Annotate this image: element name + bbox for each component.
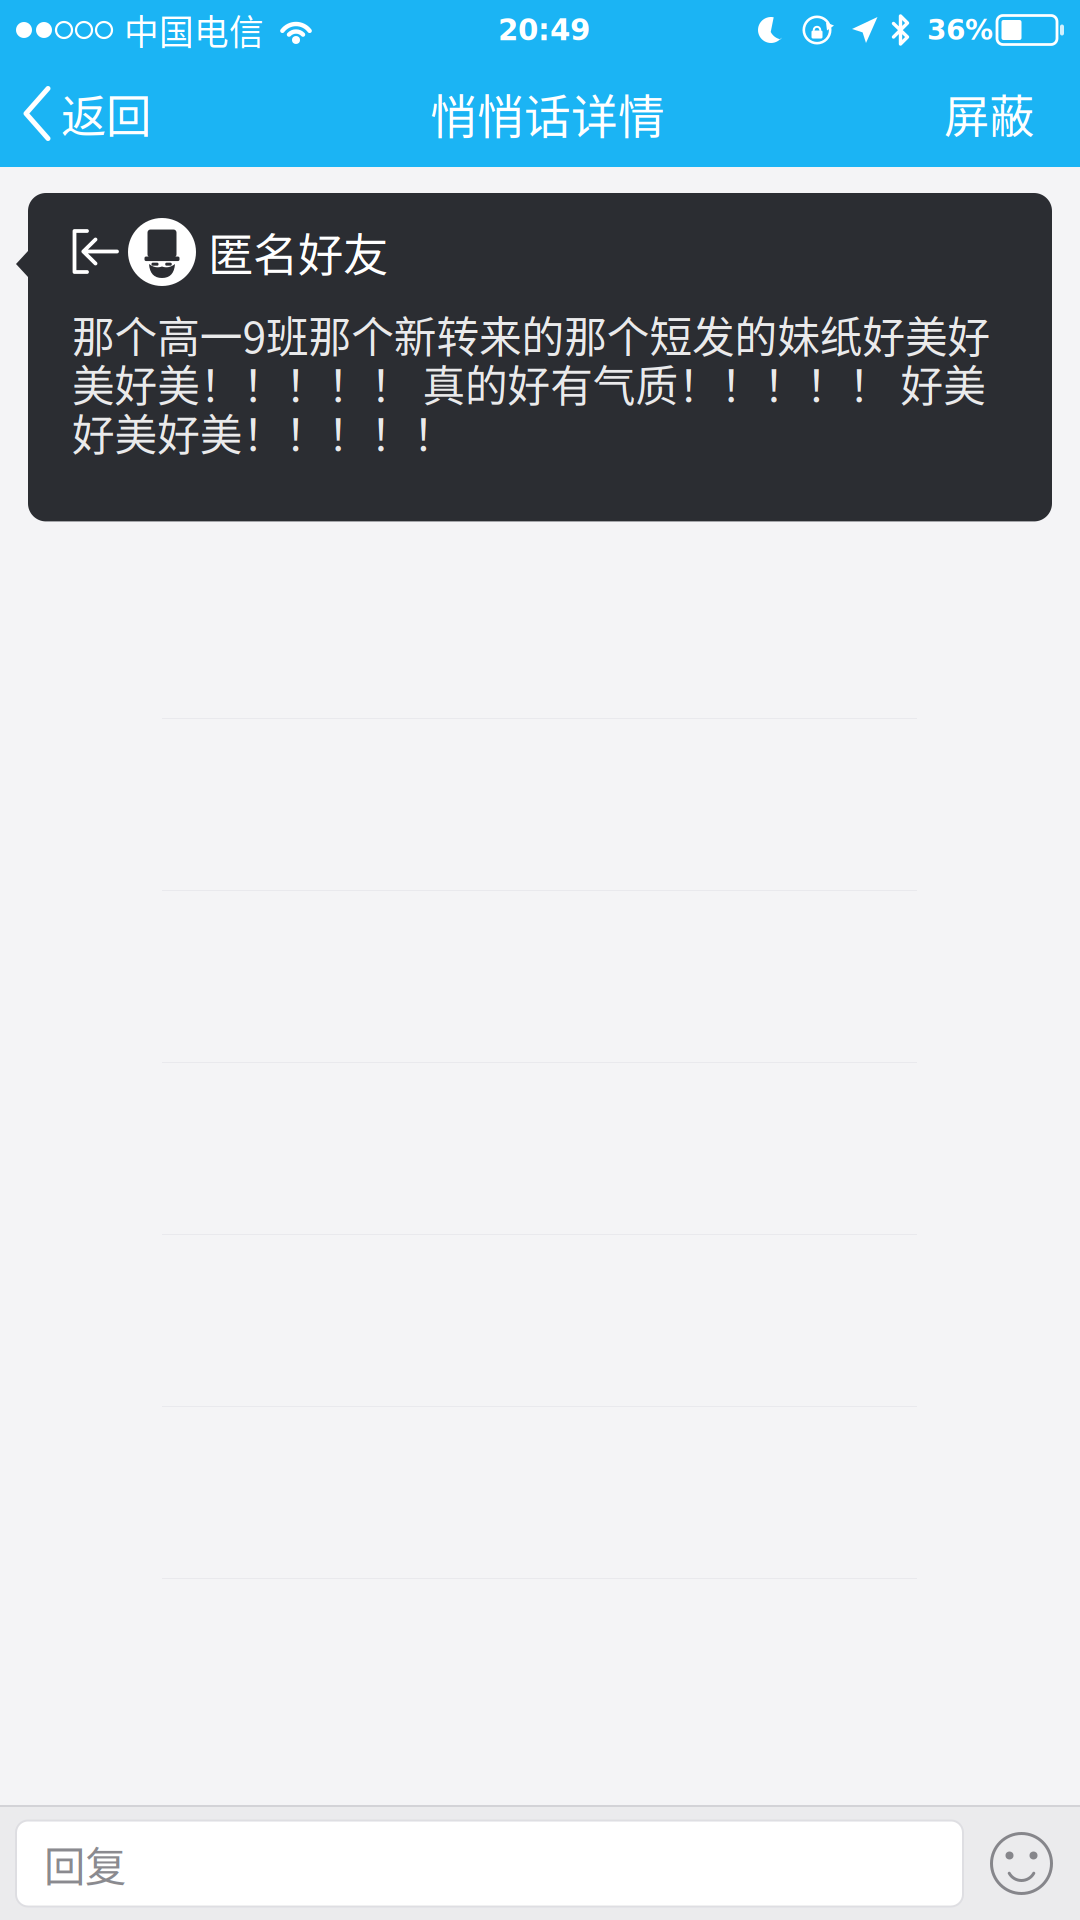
staticText: 匿名好友 — [208, 219, 388, 285]
staticText: 中国电信 — [124, 5, 264, 55]
staticText: 屏蔽 — [944, 81, 1034, 146]
staticText: 悄悄话详情 — [430, 80, 665, 147]
staticText: 回复 — [44, 1834, 126, 1893]
button[interactable]: 屏蔽 — [924, 60, 1080, 167]
button[interactable]: 匿名好友 — [0, 193, 1080, 521]
staticText: 返回 — [61, 81, 151, 146]
staticText: 那个高一9班那个新转来的那个短发的妹纸好美好美好美！！！！！ 真的好有气质！！！… — [72, 310, 991, 456]
staticText: 36% — [927, 14, 993, 46]
staticText: 20:49 — [498, 13, 590, 47]
button[interactable]: Emoji — [963, 1807, 1080, 1920]
button[interactable]: 返回 — [0, 60, 171, 167]
button[interactable]: 回复 — [16, 1820, 963, 1906]
